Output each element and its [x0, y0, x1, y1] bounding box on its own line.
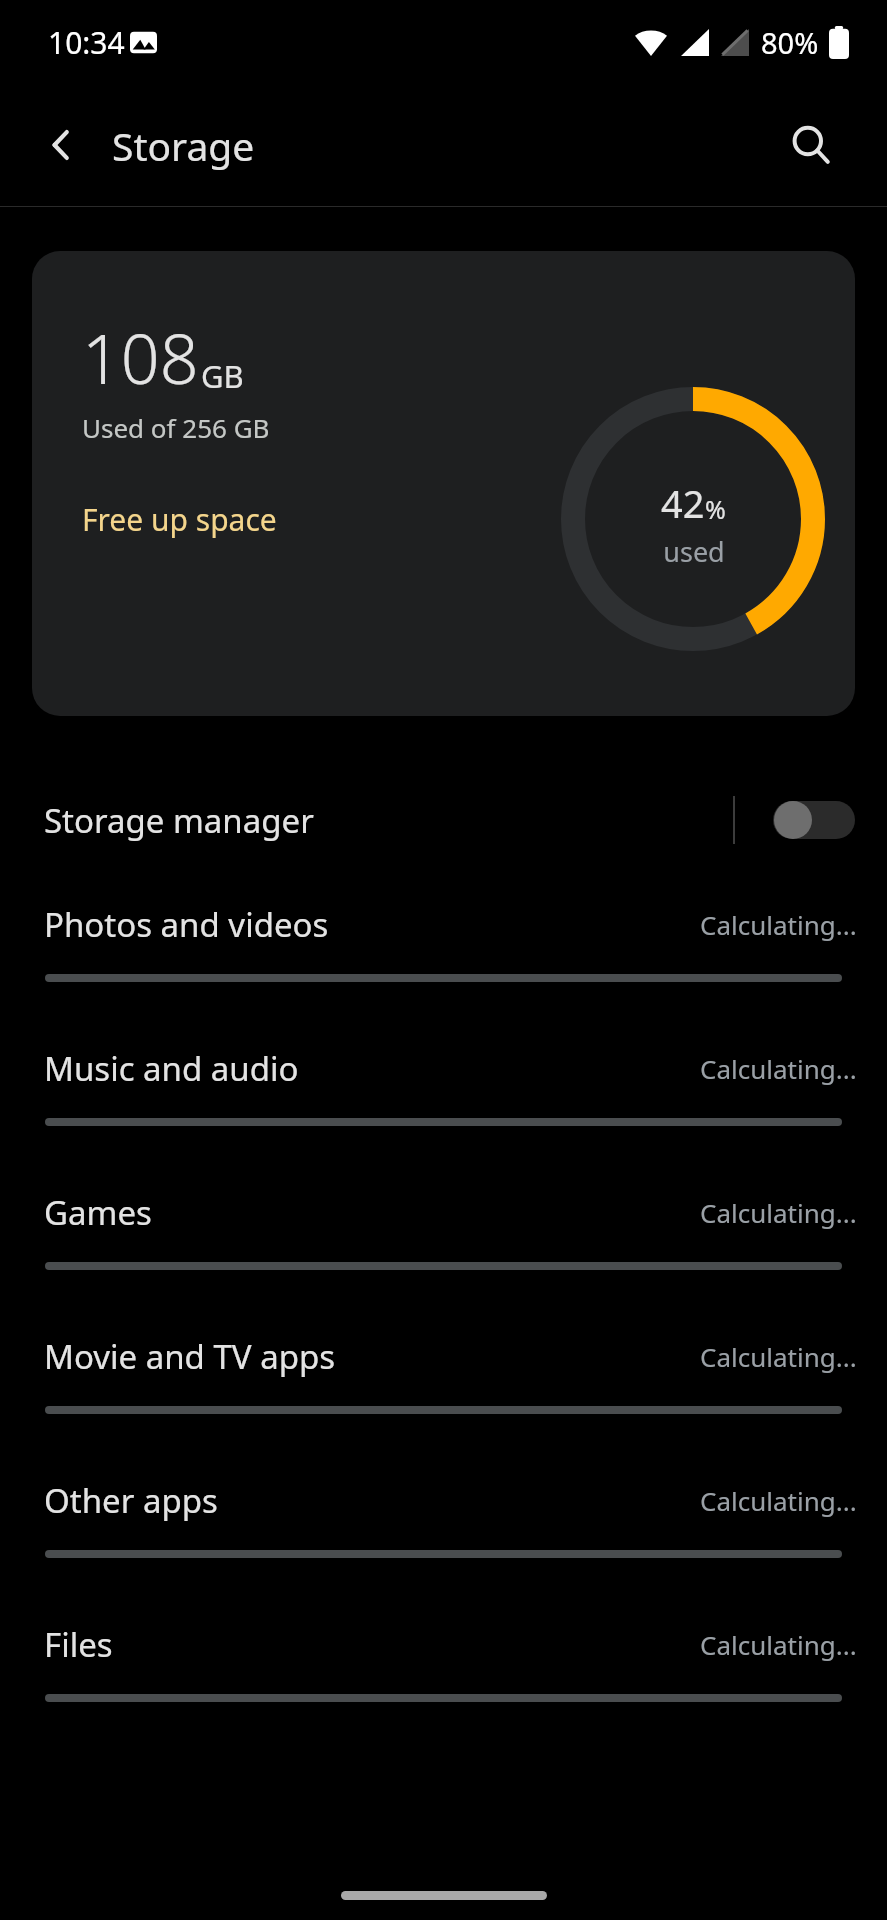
button[interactable]: Back: [26, 109, 98, 181]
button[interactable]: Search: [775, 109, 847, 181]
staticText: Calculating...: [700, 1627, 857, 1662]
button[interactable]: Storage manager toggle: [773, 792, 855, 848]
button[interactable]: Music and audio: [0, 1012, 887, 1156]
button[interactable]: Storage manager: [0, 772, 887, 868]
staticText: Storage: [112, 119, 255, 172]
staticText: Other apps: [44, 1478, 700, 1523]
staticText: 108: [82, 311, 199, 404]
staticText: Movie and TV apps: [44, 1334, 700, 1379]
button[interactable]: Games: [0, 1156, 887, 1300]
staticText: Photos and videos: [44, 902, 700, 947]
staticText: GB: [201, 355, 244, 397]
staticText: Free up space: [82, 499, 277, 540]
staticText: 10:34: [48, 22, 125, 63]
button[interactable]: Photos and videos: [0, 868, 887, 1012]
staticText: Calculating...: [700, 1483, 857, 1518]
staticText: Games: [44, 1190, 700, 1235]
button[interactable]: 108: [32, 251, 855, 716]
staticText: Files: [44, 1622, 700, 1667]
staticText: Calculating...: [700, 1051, 857, 1086]
button[interactable]: Free up space: [82, 499, 277, 540]
staticText: 80%: [761, 23, 819, 62]
staticText: Calculating...: [700, 907, 857, 942]
staticText: Storage manager: [44, 798, 733, 843]
button[interactable]: Movie and TV apps: [0, 1300, 887, 1444]
staticText: %: [705, 492, 726, 526]
staticText: used: [663, 533, 725, 570]
button[interactable]: Other apps: [0, 1444, 887, 1588]
staticText: Calculating...: [700, 1195, 857, 1230]
staticText: Calculating...: [700, 1339, 857, 1374]
staticText: 42: [661, 477, 705, 529]
staticText: Used of 256 GB: [82, 410, 270, 445]
staticText: Music and audio: [44, 1046, 700, 1091]
button[interactable]: Files: [0, 1588, 887, 1732]
